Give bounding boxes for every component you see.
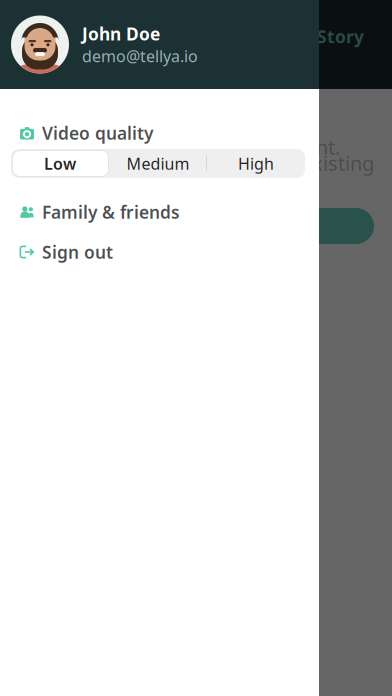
button[interactable]: Create new story (18, 208, 374, 244)
button[interactable]: Medium (109, 149, 207, 178)
staticText: John Doe (82, 22, 160, 45)
button[interactable]: Low (11, 149, 109, 178)
staticText: Capture every special moment. (52, 134, 340, 160)
staticText: High (238, 153, 274, 174)
staticText: Low (44, 153, 76, 174)
staticText: Create a new story or open an existing (18, 150, 374, 176)
staticText: Create a Story (241, 25, 364, 48)
staticText: Family & friends (42, 200, 180, 223)
button[interactable]: Video quality (0, 118, 319, 148)
staticText: Sign out (42, 240, 113, 263)
staticText: Create new story (118, 214, 274, 238)
staticText: demo@tellya.io (82, 45, 198, 67)
staticText: Medium (126, 153, 189, 174)
staticText: Video quality (42, 121, 153, 144)
button[interactable]: Family & friends (0, 197, 319, 227)
staticText: one. (176, 166, 216, 192)
button[interactable]: High (207, 149, 305, 178)
button[interactable]: Sign out (0, 237, 319, 267)
